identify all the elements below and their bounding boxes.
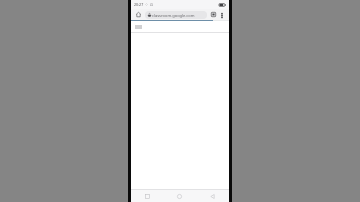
button[interactable]: Home — [134, 10, 143, 19]
button[interactable]: Back — [196, 190, 229, 202]
button[interactable]: Home — [163, 190, 196, 202]
button[interactable]: Switch tabs — [209, 10, 218, 19]
staticText: classroom.google.com — [152, 13, 195, 18]
button[interactable]: classroom.google.com — [145, 11, 207, 19]
staticText: 20:27 ⁘ ⊡ — [134, 2, 153, 7]
button[interactable]: Recent apps — [131, 190, 163, 202]
button[interactable]: More options — [218, 11, 226, 19]
